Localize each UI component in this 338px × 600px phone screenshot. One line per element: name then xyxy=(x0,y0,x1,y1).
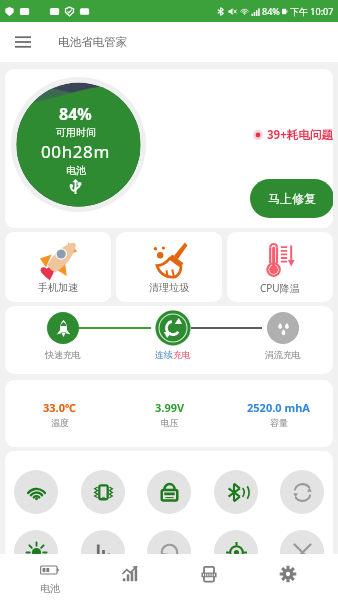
staticText: 2520.0 mhA xyxy=(247,400,310,415)
button[interactable]: Bluetooth xyxy=(214,470,258,514)
staticText: 手机加速 xyxy=(38,281,78,294)
staticText: 电压 xyxy=(161,417,179,428)
button[interactable]: Sync xyxy=(280,470,324,514)
button[interactable]: Auto rotate xyxy=(147,530,191,574)
button[interactable]: 2520.0 mhA xyxy=(224,400,333,428)
staticText: 00h28m xyxy=(41,140,110,163)
button[interactable]: Apps xyxy=(169,554,248,600)
staticText: 清理垃圾 xyxy=(149,281,189,294)
staticText: 可用时间 xyxy=(56,126,96,139)
button[interactable]: Vibrate xyxy=(81,470,125,514)
button[interactable]: Menu xyxy=(9,28,37,56)
staticText: 电池省电管家 xyxy=(58,35,127,49)
button[interactable]: Screen lock xyxy=(147,470,191,514)
staticText: 充电 xyxy=(173,349,191,360)
button[interactable]: 33.0℃ xyxy=(5,400,115,428)
button[interactable]: Brightness xyxy=(14,530,58,574)
staticText: 连续 xyxy=(155,349,173,360)
staticText: 84% xyxy=(262,5,280,17)
staticText: 快速充电 xyxy=(45,349,81,360)
staticText: 33.0℃ xyxy=(43,400,77,415)
staticText: 马上修复 xyxy=(268,191,316,206)
staticText: 涓流充电 xyxy=(265,349,301,360)
button[interactable]: 连续 xyxy=(136,310,210,360)
button[interactable]: 3.99V xyxy=(115,400,224,428)
staticText: 下午 10:07 xyxy=(290,5,334,17)
button[interactable]: 快速充电 xyxy=(26,312,100,360)
button[interactable]: Location xyxy=(214,530,258,574)
button[interactable]: 手机加速 xyxy=(5,232,111,302)
staticText: 39+耗电问题 xyxy=(267,127,333,143)
button[interactable]: Wifi xyxy=(14,470,58,514)
staticText: 温度 xyxy=(51,417,69,428)
button[interactable]: Volume xyxy=(81,530,125,574)
staticText: 电池 xyxy=(66,164,86,177)
staticText: 3.99V xyxy=(155,400,185,415)
button[interactable]: 清理垃圾 xyxy=(116,232,222,302)
button[interactable]: More tools xyxy=(280,530,324,574)
button[interactable]: Statistics xyxy=(90,554,169,600)
staticText: 容量 xyxy=(270,417,288,428)
staticText: 84% xyxy=(59,103,92,125)
button[interactable]: 马上修复 xyxy=(250,179,333,218)
staticText: CPU降温 xyxy=(260,281,300,295)
staticText: 电池 xyxy=(40,582,60,595)
button[interactable]: 涓流充电 xyxy=(246,312,320,360)
button[interactable]: Settings xyxy=(248,554,327,600)
button[interactable]: 电池 xyxy=(10,554,90,600)
button[interactable]: CPU降温 xyxy=(227,232,333,302)
